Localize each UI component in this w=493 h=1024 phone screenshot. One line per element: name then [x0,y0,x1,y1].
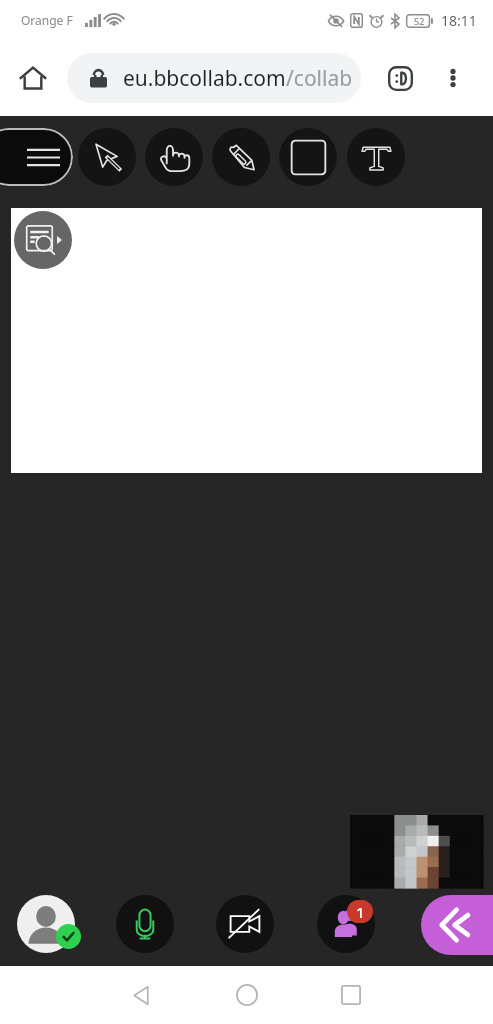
button[interactable]: Self view video [350,815,483,888]
button[interactable]: Camera off [216,895,274,953]
staticText: 1 [356,902,365,922]
button[interactable]: More options [431,56,475,100]
staticText: 52 [414,15,425,27]
button[interactable]: Back [112,966,170,1024]
button[interactable]: Home [218,966,276,1024]
button[interactable]: Microphone [116,895,174,953]
button[interactable]: Profile [378,56,422,100]
button[interactable]: Recents [322,966,380,1024]
staticText: 18:11 [441,11,477,30]
button[interactable]: Find in document [14,211,72,269]
button[interactable]: eu.bbcollab.com [67,53,361,103]
staticText: /collab [286,64,353,93]
button[interactable]: Pointer [78,128,136,186]
staticText: eu.bbcollab.com [123,64,286,93]
staticText: Orange F [21,12,73,28]
button[interactable]: Shape [279,128,337,186]
button[interactable]: Your profile [17,895,75,953]
button[interactable]: Open panel [421,895,493,955]
button[interactable]: Text [347,128,405,186]
button[interactable]: Participants [317,895,375,953]
button[interactable]: Hand [145,128,203,186]
button[interactable]: Pencil [212,128,270,186]
button[interactable]: Home [11,56,55,100]
button[interactable]: Menu [0,128,73,186]
